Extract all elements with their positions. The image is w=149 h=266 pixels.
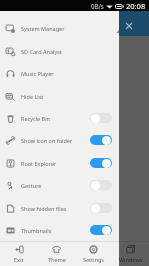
staticText: Exit — [14, 256, 24, 263]
staticText: Thumbnails — [21, 227, 52, 234]
staticText: 0B/s — [91, 2, 104, 10]
button[interactable]: Gesture — [0, 174, 149, 196]
button[interactable]: Windows — [112, 242, 149, 266]
button[interactable]: Disabled — [90, 180, 112, 190]
staticText: Show icon on folder — [21, 137, 73, 144]
staticText: Recycle Bin — [21, 115, 50, 122]
staticText: Hide List — [21, 93, 44, 100]
staticText: Gesture — [21, 182, 42, 189]
button[interactable]: Exit — [0, 242, 38, 266]
button[interactable]: SD Card Analyst — [0, 40, 149, 62]
button[interactable]: Settings — [75, 242, 112, 266]
staticText: SD Card Analyst — [21, 48, 62, 55]
staticText: Music Player — [21, 70, 54, 77]
button[interactable]: Enabled — [90, 135, 112, 145]
button[interactable]: Thumbnails — [0, 219, 149, 241]
button[interactable]: Enabled — [90, 158, 112, 168]
button[interactable]: Disabled — [90, 113, 112, 123]
button[interactable]: Hide List — [0, 85, 149, 107]
button[interactable]: Show icon on folder — [0, 129, 149, 151]
staticText: 20:08 — [126, 1, 146, 11]
staticText: Windows — [119, 256, 143, 263]
staticText: Root Explorer — [21, 160, 57, 167]
button[interactable]: Recycle Bin — [0, 107, 149, 129]
button[interactable]: System Manager — [0, 17, 149, 39]
button[interactable]: Enabled — [90, 225, 112, 235]
staticText: Settings — [83, 256, 104, 263]
button[interactable]: Disabled — [90, 203, 112, 213]
button[interactable]: Show hidden files — [0, 197, 149, 219]
button[interactable]: Theme — [38, 242, 75, 266]
staticText: Theme — [48, 256, 66, 263]
button[interactable]: Root Explorer — [0, 152, 149, 174]
button[interactable]: Close — [126, 23, 132, 29]
staticText: Show hidden files — [21, 205, 67, 212]
staticText: System Manager — [21, 25, 65, 32]
button[interactable]: Music Player — [0, 62, 149, 84]
